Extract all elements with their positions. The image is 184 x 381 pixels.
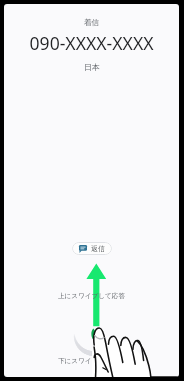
staticText: 日本 — [84, 62, 100, 72]
staticText: 着信 — [84, 18, 99, 27]
button[interactable]: 返信 — [72, 242, 112, 255]
staticText: 返信 — [91, 244, 105, 253]
staticText: 090-XXXX-XXXX — [29, 31, 154, 55]
staticText: 下にスワイプして拒否 — [58, 357, 126, 365]
staticText: 上にスワイプして応答 — [58, 292, 126, 300]
